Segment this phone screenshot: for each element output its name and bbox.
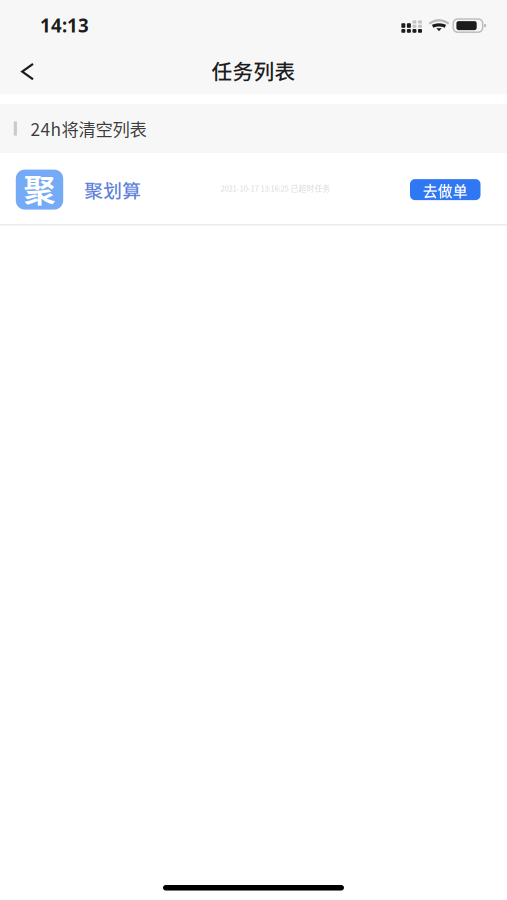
staticText: 任务列表 — [211, 55, 295, 85]
button[interactable]: 返回 — [0, 43, 48, 96]
staticText: 24h将清空列表 — [30, 116, 146, 141]
button[interactable]: 去做单 — [410, 179, 480, 200]
staticText: 聚划算 — [84, 176, 141, 203]
staticText: 2021-10-17 13:16:25 已超时任务 — [221, 182, 331, 194]
button[interactable]: 聚 — [0, 153, 507, 226]
staticText: 聚 — [23, 165, 55, 211]
staticText: 去做单 — [423, 180, 468, 201]
staticText: 14:13 — [40, 13, 89, 38]
